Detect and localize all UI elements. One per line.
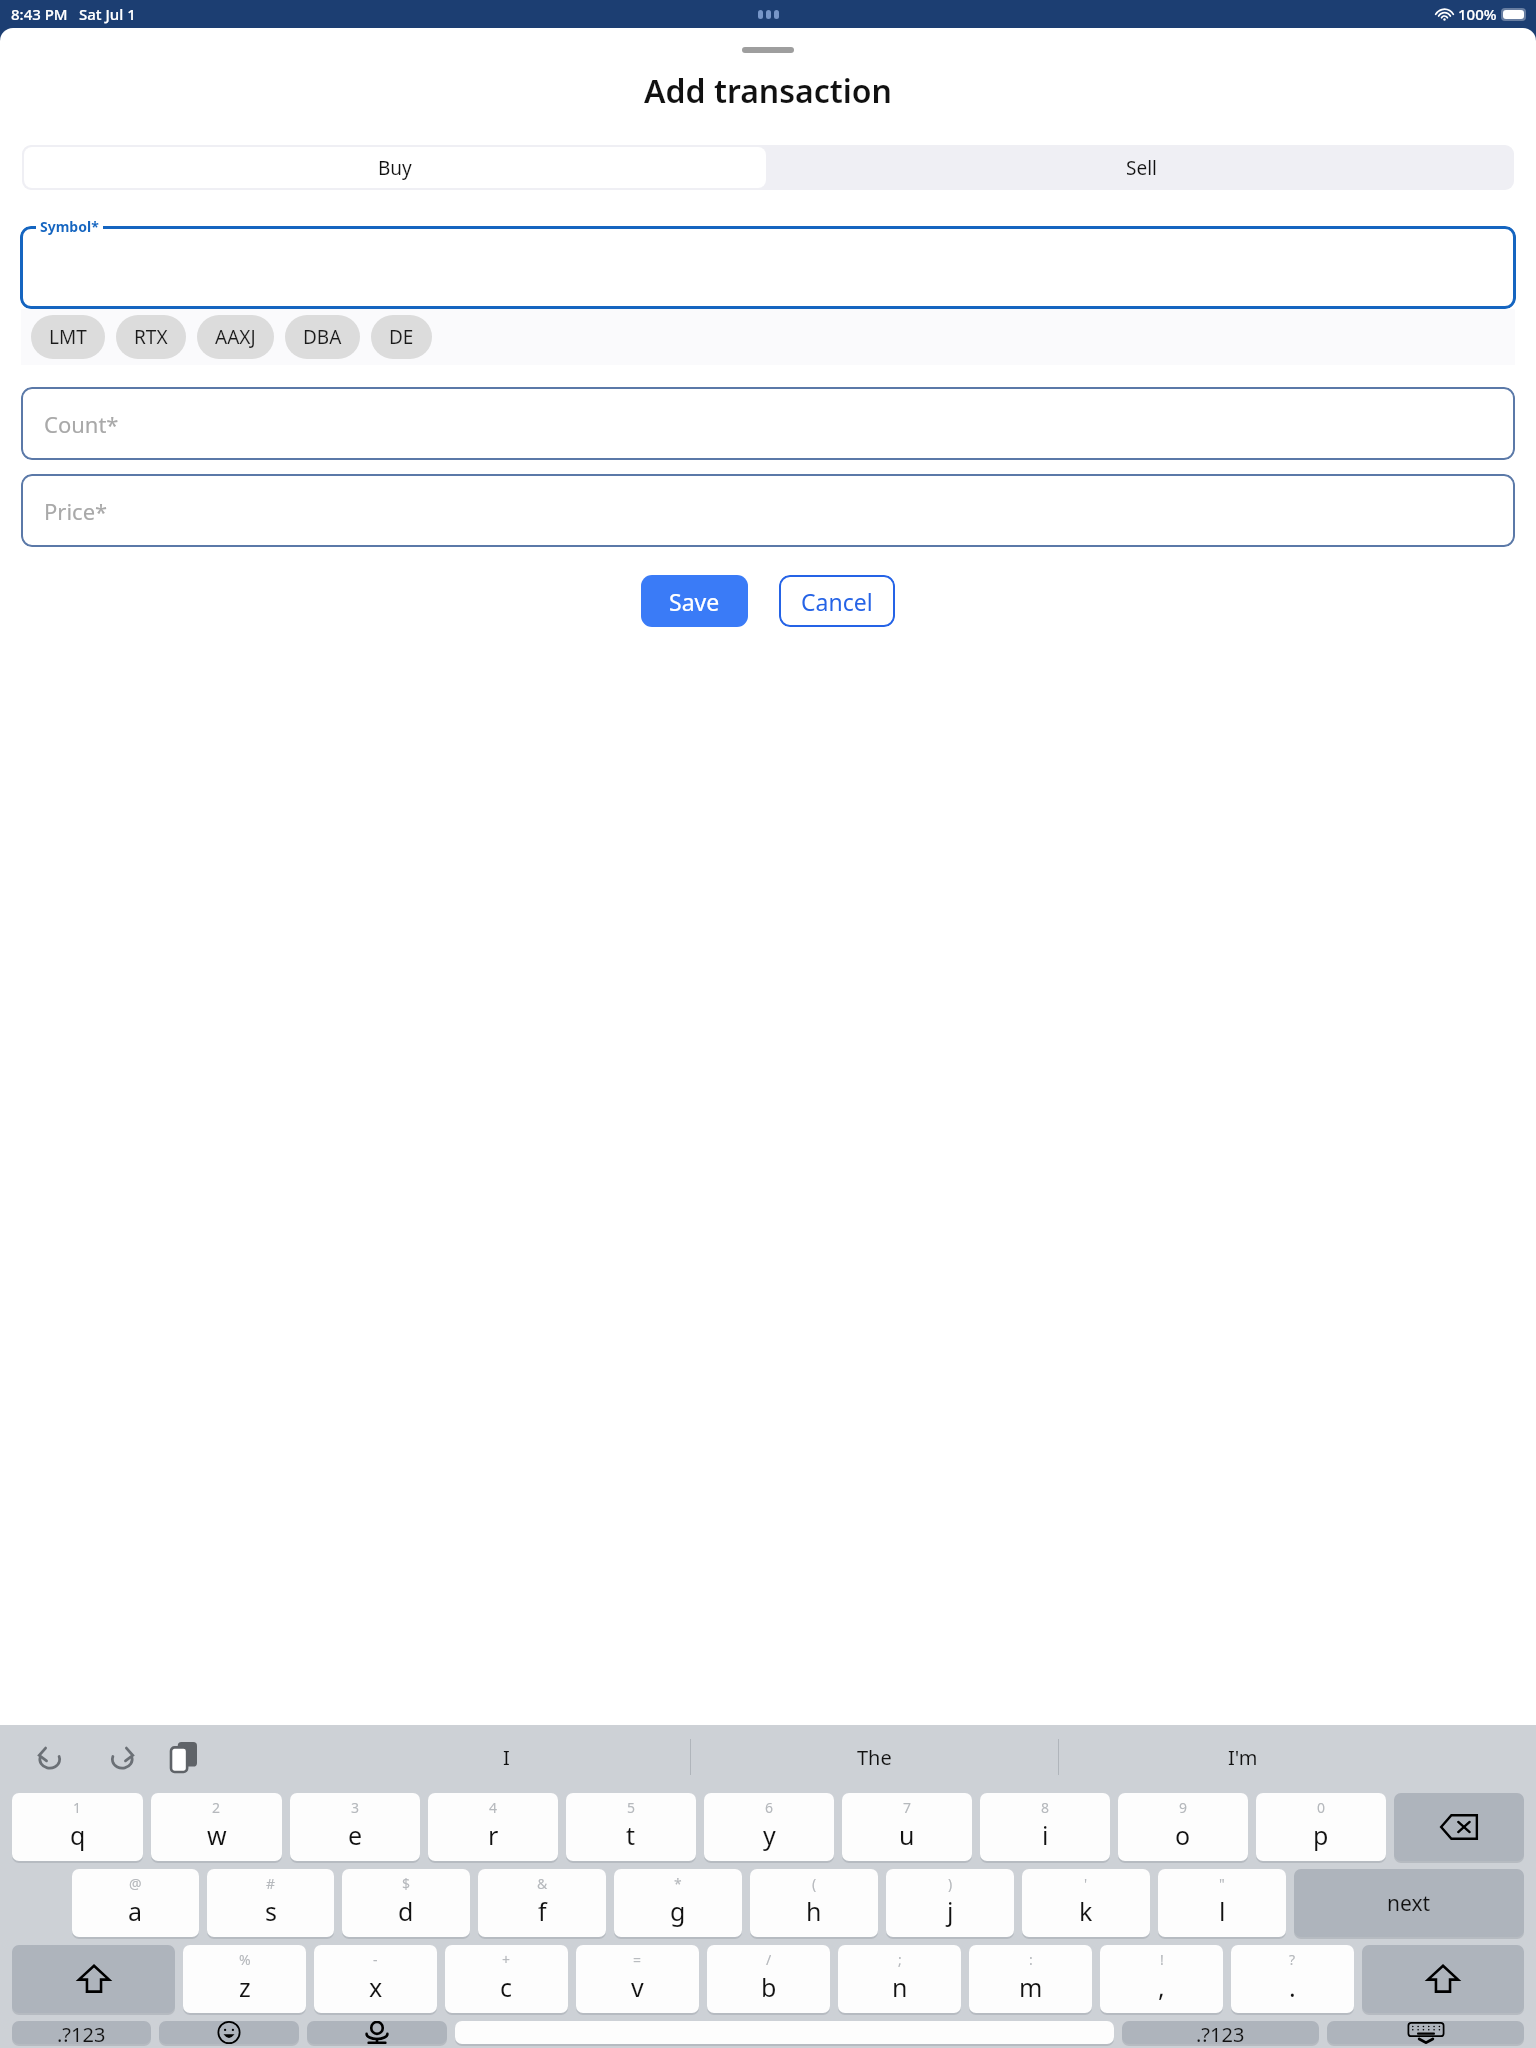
- button[interactable]: #: [207, 1869, 334, 1937]
- button[interactable]: DBA: [285, 315, 360, 359]
- button[interactable]: ": [1158, 1869, 1286, 1937]
- staticText: ;: [898, 1950, 902, 1969]
- staticText: v: [631, 1970, 644, 2004]
- staticText: f: [538, 1894, 547, 1928]
- staticText: =: [633, 1950, 642, 1969]
- button[interactable]: Buy: [24, 147, 766, 188]
- button[interactable]: ;: [838, 1945, 961, 2013]
- button[interactable]: Save: [641, 575, 748, 627]
- staticText: g: [670, 1894, 686, 1928]
- button[interactable]: Redo: [98, 1735, 142, 1779]
- staticText: q: [70, 1818, 86, 1852]
- button[interactable]: $: [342, 1869, 470, 1937]
- staticText: RTX: [134, 324, 168, 350]
- staticText: Save: [669, 586, 720, 617]
- staticText: e: [348, 1818, 363, 1852]
- button[interactable]: Paste: [162, 1735, 206, 1779]
- staticText: .: [1289, 1970, 1296, 2004]
- button[interactable]: 3: [290, 1793, 420, 1861]
- staticText: Buy: [378, 155, 412, 181]
- button[interactable]: [20, 226, 1516, 309]
- button[interactable]: I'm: [1059, 1725, 1426, 1789]
- staticText: Sat Jul 1: [79, 4, 136, 24]
- staticText: t: [626, 1818, 636, 1852]
- staticText: AAXJ: [215, 324, 256, 350]
- staticText: h: [806, 1894, 822, 1928]
- staticText: j: [947, 1894, 954, 1928]
- button[interactable]: 8: [980, 1793, 1110, 1861]
- staticText: 100%: [1458, 4, 1497, 24]
- staticText: i: [1042, 1818, 1049, 1852]
- button[interactable]: ): [886, 1869, 1014, 1937]
- button[interactable]: Shift: [1362, 1945, 1524, 2013]
- staticText: k: [1079, 1894, 1093, 1928]
- button[interactable]: LMT: [31, 315, 105, 359]
- button[interactable]: Shift: [12, 1945, 175, 2013]
- button[interactable]: 7: [842, 1793, 972, 1861]
- button[interactable]: 1: [12, 1793, 143, 1861]
- staticText: o: [1175, 1818, 1191, 1852]
- staticText: DE: [389, 324, 414, 350]
- button[interactable]: Hide keyboard: [1327, 2021, 1524, 2044]
- button[interactable]: Count*: [21, 387, 1515, 460]
- button[interactable]: !: [1100, 1945, 1223, 2013]
- button[interactable]: 4: [428, 1793, 558, 1861]
- button[interactable]: .?123: [12, 2021, 151, 2044]
- button[interactable]: 0: [1256, 1793, 1386, 1861]
- button[interactable]: Voice input: [307, 2021, 447, 2044]
- button[interactable]: &: [478, 1869, 606, 1937]
- staticText: 4: [489, 1798, 498, 1817]
- button[interactable]: RTX: [116, 315, 186, 359]
- button[interactable]: ?: [1231, 1945, 1354, 2013]
- button[interactable]: -: [314, 1945, 437, 2013]
- button[interactable]: @: [72, 1869, 199, 1937]
- button[interactable]: /: [707, 1945, 830, 2013]
- button[interactable]: Emoji: [159, 2021, 299, 2044]
- button[interactable]: I: [323, 1725, 690, 1789]
- button[interactable]: 6: [704, 1793, 834, 1861]
- button[interactable]: (: [750, 1869, 878, 1937]
- staticText: LMT: [49, 324, 87, 350]
- button[interactable]: %: [183, 1945, 306, 2013]
- button[interactable]: ': [1022, 1869, 1150, 1937]
- button[interactable]: The: [691, 1725, 1058, 1789]
- button[interactable]: 9: [1118, 1793, 1248, 1861]
- staticText: x: [369, 1970, 383, 2004]
- staticText: %: [239, 1950, 251, 1969]
- button[interactable]: :: [969, 1945, 1092, 2013]
- button[interactable]: Price*: [21, 474, 1515, 547]
- staticText: c: [500, 1970, 513, 2004]
- staticText: !: [1160, 1950, 1164, 1969]
- staticText: /: [766, 1950, 772, 1969]
- button[interactable]: Cancel: [779, 575, 895, 627]
- button[interactable]: Undo: [30, 1735, 74, 1779]
- button[interactable]: DE: [371, 315, 432, 359]
- staticText: 9: [1179, 1798, 1188, 1817]
- staticText: (: [812, 1874, 817, 1893]
- button[interactable]: Sell: [768, 145, 1514, 190]
- staticText: @: [129, 1874, 142, 1893]
- button[interactable]: 5: [566, 1793, 696, 1861]
- staticText: #: [266, 1874, 276, 1893]
- button[interactable]: AAXJ: [197, 315, 274, 359]
- staticText: r: [488, 1818, 499, 1852]
- staticText: *: [674, 1874, 682, 1893]
- staticText: p: [1313, 1818, 1329, 1852]
- staticText: 1: [73, 1798, 82, 1817]
- staticText: The: [857, 1744, 892, 1771]
- button[interactable]: .?123: [1122, 2021, 1319, 2044]
- staticText: ?: [1289, 1950, 1296, 1969]
- staticText: w: [207, 1818, 227, 1852]
- staticText: 2: [212, 1798, 221, 1817]
- button[interactable]: +: [445, 1945, 568, 2013]
- staticText: s: [265, 1894, 277, 1928]
- staticText: 8:43 PM: [11, 4, 68, 24]
- button[interactable]: *: [614, 1869, 742, 1937]
- staticText: ": [1219, 1874, 1225, 1893]
- button[interactable]: next: [1294, 1869, 1524, 1937]
- button[interactable]: 2: [151, 1793, 282, 1861]
- staticText: ': [1084, 1874, 1088, 1893]
- staticText: 0: [1317, 1798, 1326, 1817]
- button[interactable]: Backspace: [1394, 1793, 1524, 1861]
- button[interactable]: =: [576, 1945, 699, 2013]
